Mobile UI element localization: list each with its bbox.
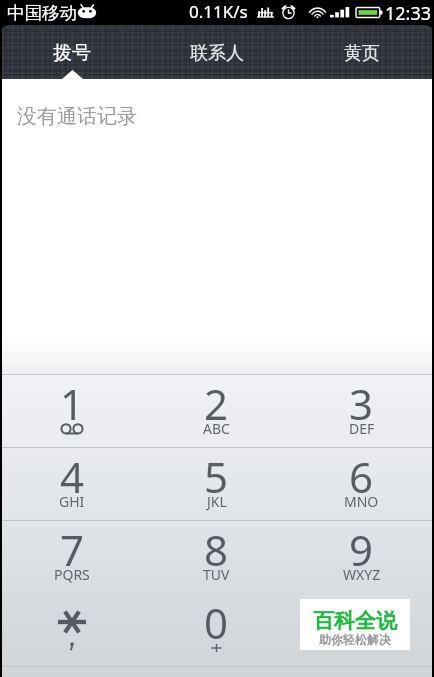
- button[interactable]: 2: [144, 375, 289, 447]
- staticText: 9: [349, 521, 374, 578]
- staticText: GHI: [59, 492, 85, 511]
- staticText: 6: [349, 448, 374, 505]
- staticText: 12:33: [385, 1, 432, 26]
- staticText: 0: [204, 594, 229, 651]
- staticText: 拨号: [53, 41, 91, 65]
- staticText: 2: [204, 375, 229, 432]
- button[interactable]: [0, 594, 144, 666]
- staticText: 没有通话记录: [17, 104, 137, 129]
- staticText: 8: [204, 521, 229, 578]
- button[interactable]: 黄页: [289, 25, 434, 79]
- staticText: 3: [349, 375, 374, 432]
- button[interactable]: 7: [0, 521, 144, 594]
- staticText: 5: [204, 448, 229, 505]
- staticText: DEF: [349, 419, 375, 438]
- button[interactable]: 1: [0, 375, 144, 447]
- button[interactable]: 6: [289, 448, 434, 520]
- staticText: TUV: [203, 565, 230, 584]
- staticText: 4: [60, 448, 85, 505]
- staticText: PQRS: [54, 565, 90, 584]
- button[interactable]: [289, 594, 434, 666]
- button[interactable]: 8: [144, 521, 289, 594]
- button[interactable]: 0: [144, 594, 289, 666]
- staticText: 联系人: [190, 42, 244, 65]
- staticText: MNO: [344, 492, 379, 511]
- button[interactable]: 5: [144, 448, 289, 520]
- staticText: ABC: [203, 419, 230, 438]
- staticText: 1: [60, 375, 85, 432]
- staticText: 7: [60, 521, 85, 578]
- button[interactable]: 拨号: [0, 25, 144, 79]
- button[interactable]: 4: [0, 448, 144, 520]
- staticText: 助你轻松解决: [319, 632, 391, 647]
- button[interactable]: 3: [289, 375, 434, 447]
- button[interactable]: 联系人: [144, 25, 289, 79]
- staticText: WXYZ: [343, 565, 381, 584]
- staticText: 百科全说: [313, 608, 397, 634]
- staticText: 中国移动: [7, 2, 77, 24]
- staticText: 0.11K/s: [189, 0, 248, 23]
- button[interactable]: 9: [289, 521, 434, 594]
- staticText: JKL: [207, 492, 227, 511]
- staticText: 黄页: [344, 42, 380, 65]
